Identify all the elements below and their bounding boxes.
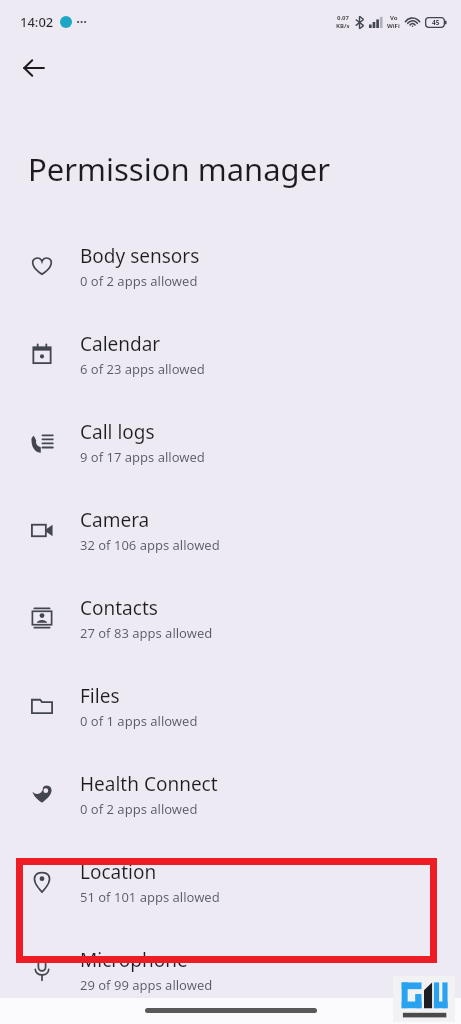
staticText: KB/s [336, 22, 350, 30]
staticText: 29 of 99 apps allowed [80, 976, 213, 994]
staticText: Permission manager [28, 148, 330, 190]
staticText: 51 of 101 apps allowed [80, 888, 220, 906]
button[interactable]: Files [0, 662, 461, 750]
button[interactable]: Body sensors [0, 222, 461, 310]
staticText: Location [80, 859, 157, 885]
staticText: 32 of 106 apps allowed [80, 536, 220, 554]
staticText: 0 of 2 apps allowed [80, 272, 198, 290]
staticText: WiFi [387, 22, 400, 30]
staticText: Calendar [80, 331, 161, 357]
staticText: Camera [80, 507, 150, 533]
button[interactable]: Call logs [0, 398, 461, 486]
staticText: 0 of 1 apps allowed [80, 712, 198, 730]
staticText: 6 of 23 apps allowed [80, 360, 205, 378]
staticText: Files [80, 683, 120, 709]
staticText: 9 of 17 apps allowed [80, 448, 205, 466]
staticText: 0.07 [337, 14, 349, 22]
button[interactable]: Health Connect [0, 750, 461, 838]
button[interactable]: Microphone [0, 926, 461, 1014]
staticText: Health Connect [80, 771, 218, 797]
button[interactable]: Camera [0, 486, 461, 574]
button[interactable]: Location [0, 838, 461, 926]
staticText: 45 [432, 18, 440, 27]
staticText: Call logs [80, 419, 155, 445]
staticText: 14:02 [20, 13, 54, 31]
staticText: 0 of 2 apps allowed [80, 800, 198, 818]
button[interactable]: Back [10, 44, 58, 92]
staticText: 27 of 83 apps allowed [80, 624, 213, 642]
button[interactable]: Calendar [0, 310, 461, 398]
staticText: Vo [390, 14, 398, 22]
staticText: Body sensors [80, 243, 200, 269]
staticText: Contacts [80, 595, 158, 621]
button[interactable]: Contacts [0, 574, 461, 662]
staticText: Microphone [80, 947, 188, 973]
